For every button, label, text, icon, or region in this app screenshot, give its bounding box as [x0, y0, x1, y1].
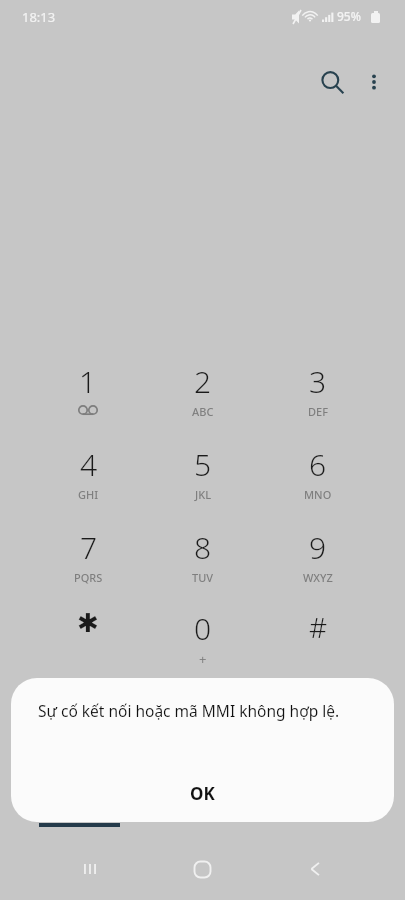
button[interactable]: 4 — [43, 438, 133, 510]
staticText: OK — [190, 782, 215, 805]
button[interactable]: 1 — [43, 355, 133, 427]
staticText: + — [199, 650, 207, 668]
staticText: MNO — [304, 487, 332, 502]
button[interactable]: Home — [182, 849, 222, 889]
button[interactable]: Search — [312, 62, 352, 102]
staticText: 4 — [80, 444, 98, 485]
button[interactable]: Back — [295, 849, 335, 889]
button[interactable]: 2 — [158, 355, 248, 427]
button[interactable]: 9 — [273, 521, 363, 593]
staticText: # — [309, 608, 328, 646]
staticText: JKL — [195, 487, 212, 502]
staticText: 6 — [309, 444, 327, 485]
button[interactable]: More options — [354, 62, 394, 102]
staticText: 3 — [309, 361, 327, 402]
button[interactable]: 3 — [273, 355, 363, 427]
button[interactable]: 8 — [158, 521, 248, 593]
button[interactable]: Recents — [70, 849, 110, 889]
staticText: ABC — [192, 404, 214, 419]
staticText: 8 — [194, 527, 212, 568]
staticText: 18:13 — [22, 8, 56, 26]
staticText: 9 — [309, 527, 327, 568]
staticText: Sự cố kết nối hoặc mã MMI không hợp lệ. — [38, 700, 372, 721]
button[interactable]: 0 — [158, 602, 248, 674]
staticText: GHI — [78, 487, 99, 502]
button[interactable]: OK — [11, 770, 394, 816]
button[interactable]: 5 — [158, 438, 248, 510]
staticText: PQRS — [74, 570, 103, 585]
staticText: 2 — [194, 361, 212, 402]
button[interactable]: # — [273, 602, 363, 674]
staticText: 0 — [194, 608, 212, 649]
staticText: 5 — [194, 444, 212, 485]
button[interactable]: 6 — [273, 438, 363, 510]
button[interactable]: ✱ — [43, 602, 133, 674]
staticText: ✱ — [77, 608, 99, 638]
button[interactable]: 7 — [43, 521, 133, 593]
staticText: WXYZ — [303, 570, 333, 585]
staticText: 95% — [337, 8, 361, 24]
staticText: TUV — [192, 570, 214, 585]
staticText: DEF — [308, 404, 328, 419]
staticText: 1 — [79, 361, 97, 402]
staticText: 7 — [80, 527, 98, 568]
